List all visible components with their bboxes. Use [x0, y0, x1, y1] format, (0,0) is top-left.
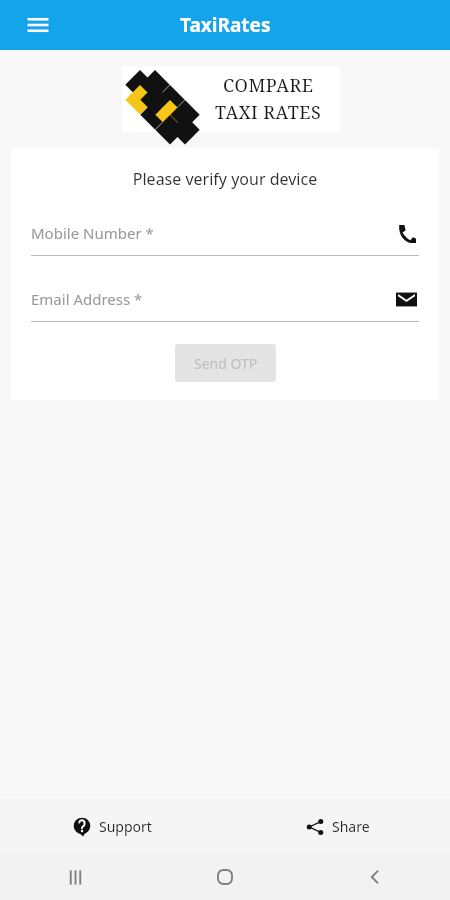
staticText: Email Address * — [31, 289, 393, 309]
staticText: TAXI RATES — [215, 100, 322, 125]
other: Phone — [393, 220, 419, 246]
button[interactable]: Recent apps — [0, 854, 150, 900]
button[interactable]: Home — [150, 854, 300, 900]
button[interactable]: Back — [300, 854, 450, 900]
button[interactable]: Mobile Number * — [31, 220, 419, 256]
staticText: TaxiRates — [180, 12, 271, 38]
staticText: COMPARE — [223, 73, 314, 98]
staticText: Support — [99, 817, 152, 836]
other: Email — [393, 286, 419, 312]
other: Support — [73, 818, 91, 836]
staticText: Please verify your device — [31, 168, 419, 190]
other: Share — [306, 818, 324, 836]
staticText: Send OTP — [194, 354, 258, 373]
button[interactable]: Send OTP — [175, 344, 276, 382]
button[interactable]: Email Address * — [31, 286, 419, 322]
staticText: Mobile Number * — [31, 223, 393, 243]
button[interactable]: Share — [225, 799, 450, 854]
staticText: Share — [332, 817, 370, 836]
button[interactable]: Support — [0, 799, 225, 854]
button[interactable]: Open navigation menu — [18, 5, 58, 45]
